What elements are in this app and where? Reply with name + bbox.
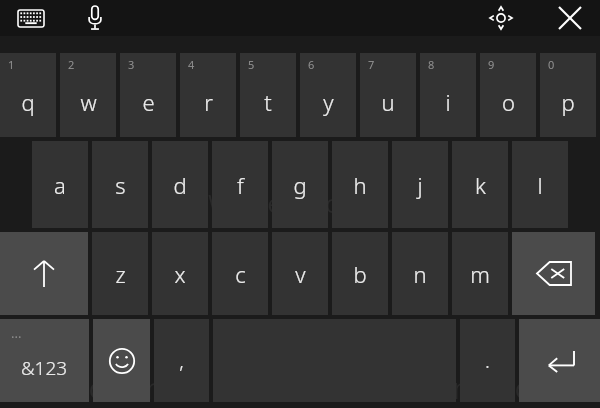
staticText: 8 [428,57,435,72]
button[interactable]: 9 [480,53,536,137]
staticText: y [323,87,334,117]
button[interactable]: f [212,141,268,228]
staticText: f [237,170,244,200]
staticText: &123 [21,355,68,381]
staticText: t [264,87,272,117]
staticText: 5 [248,57,255,72]
button[interactable]: v [272,232,328,315]
button[interactable]: x [152,232,208,315]
button[interactable]: ··· [0,319,89,402]
staticText: Winaero.com [208,186,364,220]
button[interactable]: s [92,141,148,228]
staticText: v [295,259,306,289]
staticText: a [54,170,66,200]
staticText: k [475,170,486,200]
button[interactable]: 2 [60,53,116,137]
button[interactable]: Dictation [80,4,110,32]
button[interactable]: 3 [120,53,176,137]
button[interactable]: c [212,232,268,315]
staticText: q [21,87,35,117]
staticText: g [293,170,307,200]
staticText: w [80,87,97,117]
staticText: Winaero.com [0,0,173,39]
button[interactable]: l [512,141,568,228]
button[interactable]: 4 [180,53,236,137]
button[interactable]: 5 [240,53,296,137]
button[interactable]: n [392,232,448,315]
button[interactable]: d [152,141,208,228]
button[interactable]: Emoji [93,319,150,402]
button[interactable]: 1 [0,53,56,137]
staticText: e [142,87,155,117]
staticText: s [115,170,126,200]
staticText: 3 [128,57,135,72]
button[interactable]: b [332,232,388,315]
button[interactable]: a [32,141,88,228]
staticText: , [179,347,184,374]
staticText: x [174,259,186,289]
staticText: h [353,170,367,200]
button[interactable]: j [392,141,448,228]
button[interactable]: Shift [0,232,88,315]
staticText: ··· [11,328,22,346]
staticText: Winaero.com [418,368,599,407]
staticText: Winaero.com [418,0,599,39]
button[interactable]: Keyboard layout [13,6,49,30]
staticText: o [502,87,515,117]
staticText: 7 [368,57,375,72]
button[interactable]: m [452,232,508,315]
staticText: j [417,170,423,200]
staticText: 4 [188,57,195,72]
staticText: l [537,170,543,200]
button[interactable]: g [272,141,328,228]
button[interactable]: 0 [540,53,596,137]
staticText: u [381,87,395,117]
button[interactable]: z [92,232,148,315]
staticText: 2 [68,57,75,72]
button[interactable]: 6 [300,53,356,137]
staticText: z [115,259,126,289]
button[interactable]: Backspace [512,232,595,315]
staticText: p [561,87,575,117]
staticText: 6 [308,57,315,72]
button[interactable]: 8 [420,53,476,137]
staticText: c [235,259,246,289]
staticText: n [413,259,427,289]
staticText: m [470,259,490,289]
staticText: b [353,259,367,289]
staticText: 0 [548,57,555,72]
button[interactable]: h [332,141,388,228]
staticText: 1 [8,57,15,72]
button[interactable]: Close keyboard [554,3,586,33]
staticText: d [173,170,187,200]
staticText: r [204,87,213,117]
staticText: . [485,347,490,374]
staticText: i [445,87,451,117]
button[interactable]: Enter [519,319,600,402]
staticText: 9 [488,57,495,72]
button[interactable]: . [460,319,515,402]
staticText: Winaero.com [0,368,173,407]
button[interactable]: k [452,141,508,228]
button[interactable]: , [154,319,209,402]
button[interactable]: Move keyboard [486,3,516,33]
button[interactable]: 7 [360,53,416,137]
